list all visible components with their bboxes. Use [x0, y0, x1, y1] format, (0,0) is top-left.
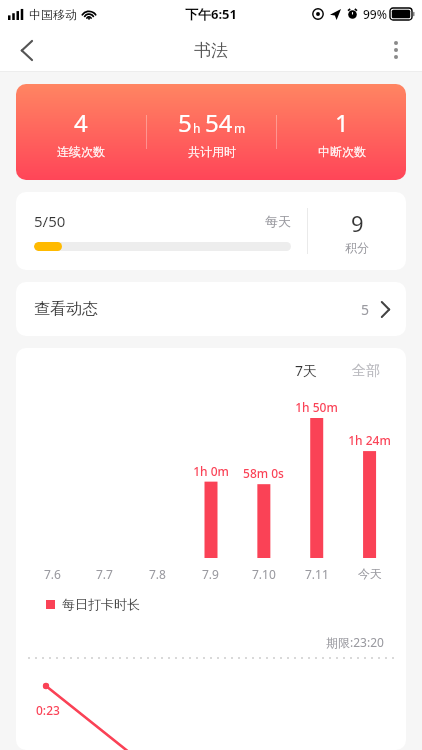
staticText: 1h 0m [193, 463, 229, 479]
staticText: 99% [363, 6, 387, 22]
staticText: h [193, 120, 201, 136]
button[interactable]: 全部 [346, 359, 386, 383]
staticText: 1h 24m [348, 432, 391, 448]
button[interactable]: Back [0, 28, 52, 72]
staticText: 58m 0s [243, 465, 284, 481]
staticText: 中断次数 [318, 144, 366, 159]
staticText: 书法 [194, 40, 228, 61]
staticText: 每天 [265, 213, 291, 229]
staticText: 9 [351, 208, 364, 238]
staticText: 1 [335, 106, 349, 139]
staticText: 7天 [295, 361, 318, 380]
staticText: 中国移动 [29, 7, 77, 22]
staticText: 5 [178, 106, 192, 139]
staticText: 0:23 [36, 702, 60, 718]
button[interactable]: 查看动态 [16, 282, 406, 336]
button[interactable]: 4 [16, 84, 406, 180]
button[interactable]: 7天 [289, 358, 324, 383]
staticText: 7.11 [305, 566, 329, 582]
staticText: 5 [361, 300, 370, 319]
staticText: 5/50 [34, 211, 66, 231]
staticText: 7.10 [252, 566, 276, 582]
staticText: 查看动态 [34, 299, 98, 319]
staticText: 7.7 [96, 566, 113, 582]
staticText: 下午6:51 [185, 5, 237, 23]
staticText: 今天 [358, 566, 382, 581]
staticText: 每日打卡时长 [62, 596, 140, 612]
staticText: 4 [74, 106, 88, 139]
staticText: 7.9 [202, 566, 219, 582]
button[interactable]: 5/50 [16, 192, 406, 270]
staticText: 7.8 [149, 566, 166, 582]
staticText: 共计用时 [188, 144, 236, 159]
staticText: 连续次数 [57, 144, 105, 159]
staticText: 全部 [352, 362, 380, 380]
staticText: 积分 [345, 240, 369, 255]
staticText: 期限:23:20 [326, 634, 384, 650]
button[interactable]: More options [370, 28, 422, 72]
staticText: 7.6 [44, 566, 61, 582]
staticText: 1h 50m [295, 399, 338, 415]
staticText: 54 [205, 106, 233, 139]
staticText: m [234, 120, 246, 136]
